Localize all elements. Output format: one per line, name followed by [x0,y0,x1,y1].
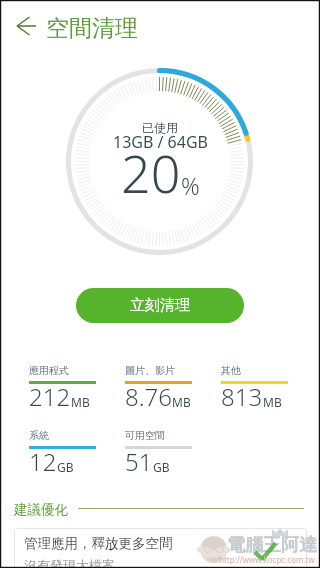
staticText: 圖片、影片 [125,364,175,377]
staticText: 12 [29,445,57,478]
staticText: 813 [221,380,263,413]
staticText: 立刻清理 [130,296,190,315]
staticText: 212 [29,380,71,413]
staticText: GB [57,459,74,475]
staticText: 51 [125,445,153,478]
staticText: 可用空間 [125,429,165,442]
staticText: http://www.kocpc.com.tw [219,554,315,565]
staticText: GB [153,459,170,475]
staticText: 系統 [29,429,49,442]
staticText: 13GB / 64GB [113,131,208,153]
button[interactable]: 立刻清理 [76,288,244,323]
staticText: 沒有發現大檔案 [24,557,115,568]
staticText: 20 [121,137,181,208]
button[interactable]: Back [4,7,48,45]
staticText: 應用程式 [29,364,69,377]
staticText: 電腦王阿達 [227,534,317,557]
staticText: MB [172,394,191,410]
staticText: MB [71,394,90,410]
staticText: 空間清理 [46,14,138,43]
staticText: 管理應用，釋放更多空間 [24,535,173,552]
button[interactable] [14,528,307,568]
staticText: 其他 [221,364,241,377]
staticText: 已使用 [142,120,178,135]
staticText: 8.76 [125,380,172,413]
staticText: 建議優化 [14,501,68,518]
staticText: MB [263,394,282,410]
staticText: % [181,170,200,201]
